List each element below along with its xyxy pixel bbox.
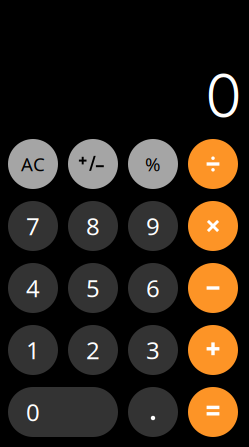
staticText: 7: [26, 210, 40, 242]
button[interactable]: 4: [8, 263, 58, 313]
staticText: AC: [21, 152, 45, 176]
button[interactable]: Multiply: [188, 201, 238, 251]
staticText: 9: [146, 210, 160, 242]
staticText: 4: [26, 272, 40, 304]
button[interactable]: 6: [128, 263, 178, 313]
staticText: 1: [26, 334, 40, 366]
button[interactable]: 5: [68, 263, 118, 313]
staticText: 0: [205, 59, 242, 132]
staticText: 3: [146, 334, 160, 366]
staticText: 5: [86, 272, 100, 304]
button[interactable]: Toggle sign: [68, 139, 118, 189]
button[interactable]: Equals: [188, 387, 238, 437]
button[interactable]: 7: [8, 201, 58, 251]
staticText: %: [145, 152, 161, 176]
staticText: 2: [86, 334, 100, 366]
button[interactable]: 0: [8, 387, 118, 437]
button[interactable]: Decimal point: [128, 387, 178, 437]
button[interactable]: Add: [188, 325, 238, 375]
button[interactable]: 2: [68, 325, 118, 375]
button[interactable]: 8: [68, 201, 118, 251]
button[interactable]: %: [128, 139, 178, 189]
staticText: 0: [26, 396, 40, 428]
button[interactable]: 3: [128, 325, 178, 375]
staticText: 8: [86, 210, 100, 242]
button[interactable]: AC: [8, 139, 58, 189]
staticText: 6: [146, 272, 160, 304]
button[interactable]: Divide: [188, 139, 238, 189]
button[interactable]: 1: [8, 325, 58, 375]
button[interactable]: Subtract: [188, 263, 238, 313]
button[interactable]: 9: [128, 201, 178, 251]
